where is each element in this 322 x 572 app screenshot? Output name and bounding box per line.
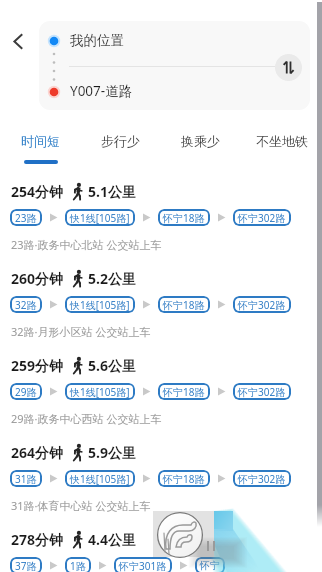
button[interactable]: 时间短: [0, 127, 80, 167]
staticText: 5.2公里: [88, 269, 136, 288]
staticText: 32路: [15, 298, 37, 312]
button[interactable]: 步行少: [80, 127, 160, 167]
staticText: 怀宁18路: [163, 385, 205, 399]
button[interactable]: 278分钟: [0, 524, 322, 572]
staticText: 快1线[105路]: [70, 211, 130, 225]
staticText: 我的位置: [70, 32, 124, 49]
staticText: 怀宁302路: [238, 298, 286, 312]
staticText: 怀宁302路: [238, 385, 286, 399]
staticText: 37路: [15, 559, 37, 572]
staticText: 1路: [70, 559, 86, 572]
button[interactable]: Back: [4, 27, 32, 55]
staticText: 快1线[105路]: [70, 385, 130, 399]
staticText: 254分钟: [11, 182, 64, 201]
staticText: 怀宁18路: [163, 298, 205, 312]
staticText: 怀宁: [200, 559, 220, 572]
staticText: 278分钟: [11, 530, 64, 549]
staticText: 29路·政务中心西站 公交站上车: [11, 411, 162, 426]
button[interactable]: Swap origin and destination: [275, 54, 302, 81]
staticText: 4.4公里: [88, 530, 136, 549]
button[interactable]: 不坐地铁: [241, 127, 322, 167]
staticText: 怀宁302路: [238, 211, 286, 225]
staticText: 怀宁18路: [163, 472, 205, 486]
button[interactable]: 264分钟: [0, 437, 322, 524]
staticText: 31路·体育中心站 公交站上车: [11, 498, 151, 513]
staticText: 时间短: [21, 133, 60, 149]
staticText: 32路·月形小区站 公交站上车: [11, 324, 151, 339]
button[interactable]: 换乘少: [160, 127, 241, 167]
staticText: 步行少: [101, 133, 140, 149]
staticText: 5.9公里: [88, 443, 136, 462]
staticText: 23路: [15, 211, 37, 225]
staticText: Y007-道路: [70, 82, 133, 100]
staticText: 不坐地铁: [256, 133, 308, 149]
staticText: 快1线[105路]: [70, 298, 130, 312]
staticText: 怀宁18路: [163, 211, 205, 225]
staticText: 264分钟: [11, 443, 64, 462]
staticText: 怀宁301路: [119, 559, 167, 572]
staticText: 5.1公里: [88, 182, 136, 201]
button[interactable]: 我的位置: [39, 21, 310, 110]
staticText: 快1线[105路]: [70, 472, 130, 486]
staticText: 260分钟: [11, 269, 64, 288]
staticText: 23路·政务中心北站 公交站上车: [11, 237, 162, 252]
button[interactable]: 260分钟: [0, 263, 322, 350]
button[interactable]: 254分钟: [0, 176, 322, 263]
staticText: 31路: [15, 472, 37, 486]
button[interactable]: 259分钟: [0, 350, 322, 437]
staticText: 换乘少: [181, 133, 220, 149]
staticText: 29路: [15, 385, 37, 399]
staticText: 5.6公里: [88, 356, 136, 375]
staticText: 怀宁302路: [238, 472, 286, 486]
staticText: 259分钟: [11, 356, 64, 375]
